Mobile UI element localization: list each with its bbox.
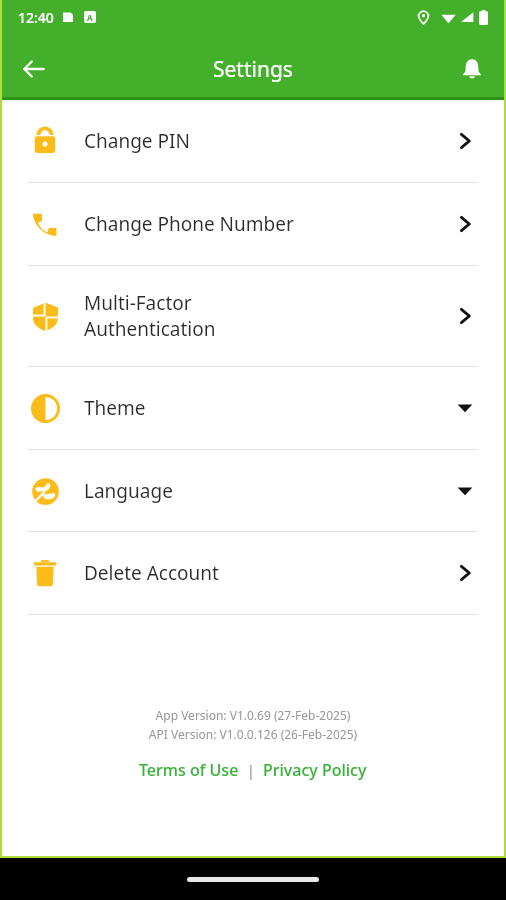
- button[interactable]: Terms of Use: [139, 759, 239, 781]
- button[interactable]: Change PIN: [0, 100, 506, 182]
- staticText: Delete Account: [84, 560, 452, 586]
- button[interactable]: Multi-Factor Authentication: [0, 266, 506, 366]
- staticText: API Version: V1.0.0.126 (26-Feb-2025): [0, 726, 506, 742]
- staticText: 12:40: [18, 8, 54, 27]
- button[interactable]: Change Phone Number: [0, 183, 506, 265]
- button[interactable]: Back: [10, 45, 58, 93]
- staticText: Theme: [84, 395, 452, 421]
- staticText: Change PIN: [84, 128, 452, 154]
- staticText: |: [239, 760, 263, 780]
- button[interactable]: Privacy Policy: [263, 759, 367, 781]
- staticText: A: [87, 12, 93, 23]
- staticText: Multi-Factor Authentication: [84, 290, 452, 342]
- staticText: Privacy Policy: [263, 759, 367, 781]
- staticText: Language: [84, 478, 452, 504]
- staticText: Change Phone Number: [84, 211, 452, 237]
- staticText: App Version: V1.0.69 (27-Feb-2025): [0, 707, 506, 723]
- button[interactable]: Notifications: [448, 45, 496, 93]
- staticText: Terms of Use: [139, 759, 239, 781]
- button[interactable]: Delete Account: [0, 532, 506, 614]
- button[interactable]: Language: [0, 450, 506, 531]
- button[interactable]: Theme: [0, 367, 506, 449]
- staticText: Settings: [213, 55, 293, 84]
